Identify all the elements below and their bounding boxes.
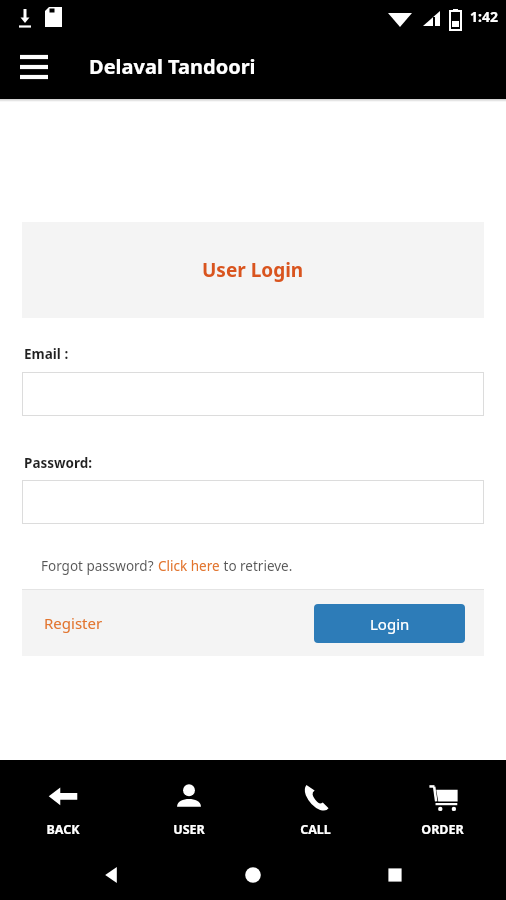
button[interactable]: ORDER xyxy=(379,760,506,850)
staticText: Delaval Tandoori xyxy=(89,53,256,80)
button[interactable]: Recent apps xyxy=(375,855,415,895)
staticText: Password: xyxy=(24,454,93,472)
staticText: BACK xyxy=(46,821,80,838)
staticText: Login xyxy=(370,614,410,634)
button[interactable]: Login xyxy=(314,604,465,643)
staticText: ORDER xyxy=(421,821,464,838)
staticText: to retrieve. xyxy=(220,557,293,575)
button[interactable]: Open navigation menu xyxy=(8,41,60,93)
staticText: Email : xyxy=(24,345,69,363)
button[interactable]: USER xyxy=(126,760,252,850)
button[interactable]: Click here xyxy=(158,557,220,575)
button[interactable]: Register xyxy=(44,613,103,633)
button[interactable]: CALL xyxy=(252,760,379,850)
button[interactable]: Back xyxy=(92,855,132,895)
staticText: Register xyxy=(44,613,103,633)
button[interactable]: Home xyxy=(233,855,273,895)
button[interactable]: BACK xyxy=(0,760,126,850)
staticText: Forgot password? xyxy=(41,557,158,575)
staticText: CALL xyxy=(300,821,331,838)
staticText: USER xyxy=(173,821,205,838)
button[interactable] xyxy=(22,372,484,416)
button[interactable] xyxy=(22,480,484,524)
staticText: Click here xyxy=(158,557,220,575)
staticText: 1:42 xyxy=(470,7,498,26)
staticText: User Login xyxy=(202,257,304,283)
